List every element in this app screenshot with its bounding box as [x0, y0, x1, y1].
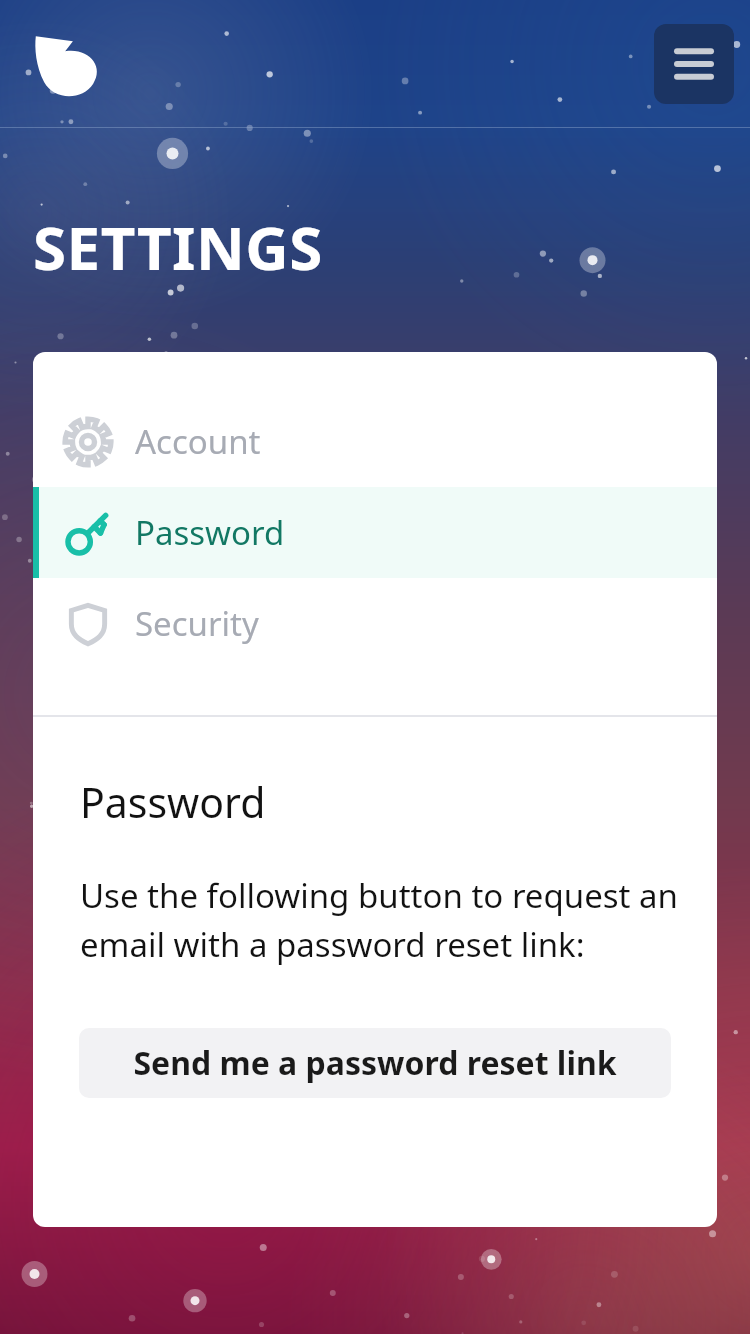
button[interactable]: Security: [33, 578, 717, 669]
staticText: Use the following button to request an e…: [80, 873, 678, 966]
staticText: Password: [80, 774, 266, 830]
staticText: SETTINGS: [33, 206, 323, 288]
staticText: Security: [135, 601, 259, 646]
staticText: Password: [135, 510, 285, 555]
button[interactable]: Home: [33, 29, 103, 101]
staticText: Account: [135, 419, 261, 464]
button[interactable]: Password: [33, 487, 717, 578]
button[interactable]: Send me a password reset link: [79, 1028, 671, 1098]
staticText: Send me a password reset link: [133, 1041, 617, 1085]
button[interactable]: Account: [33, 396, 717, 487]
button[interactable]: Menu: [654, 24, 734, 104]
